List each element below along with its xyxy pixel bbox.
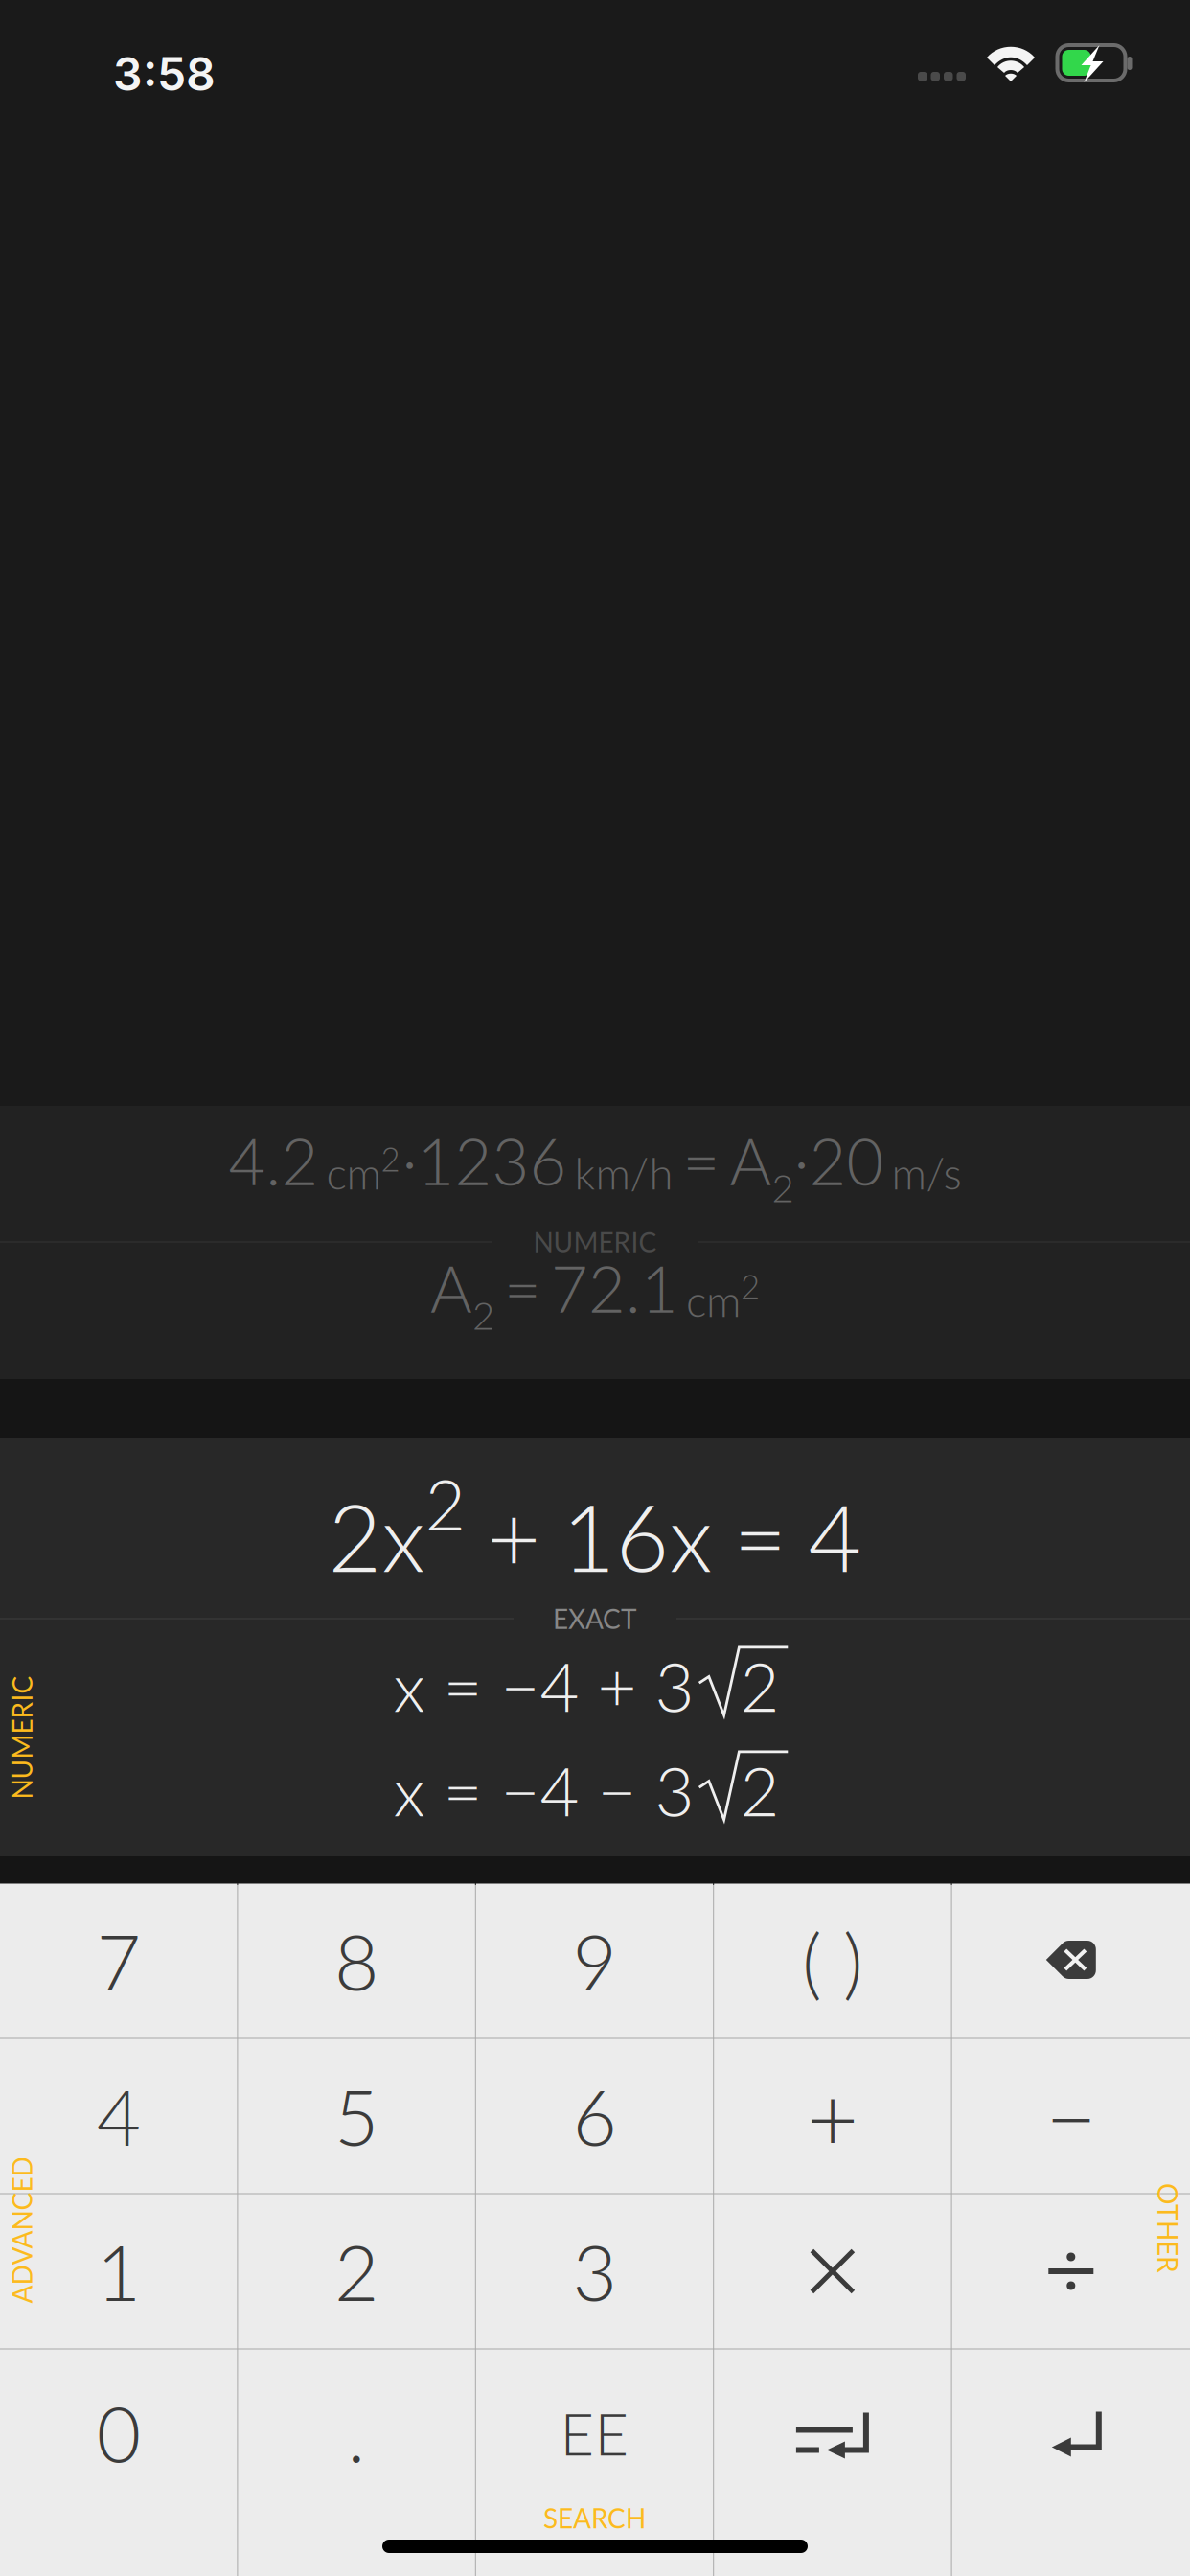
button[interactable]: ( ) <box>714 1884 951 2038</box>
staticText: − <box>1045 2062 1097 2170</box>
staticText: EXACT <box>553 1603 637 1635</box>
staticText: SEARCH <box>543 2502 646 2534</box>
staticText: OTHER <box>1123 2212 1190 2244</box>
button[interactable]: − <box>952 2039 1190 2193</box>
staticText: 72.1 <box>551 1250 678 1326</box>
staticText: x = −4 + <box>393 1645 655 1726</box>
staticText: ADVANCED <box>0 2214 95 2246</box>
staticText: ·20 <box>794 1122 884 1199</box>
button[interactable]: 6 <box>476 2039 713 2193</box>
button[interactable]: New line <box>714 2349 951 2576</box>
button[interactable]: 1 <box>0 2194 237 2348</box>
staticText: 2 <box>334 2225 379 2317</box>
staticText: km/h <box>574 1147 673 1199</box>
button[interactable]: OTHER <box>1149 2132 1187 2324</box>
staticText: 3 <box>655 1645 694 1726</box>
button[interactable]: 5 <box>238 2039 475 2193</box>
staticText: m/s <box>892 1147 961 1199</box>
staticText: 4.2 <box>229 1122 319 1199</box>
staticText: NUMERIC <box>533 1226 657 1258</box>
staticText: NUMERIC <box>0 1721 84 1754</box>
staticText: 2 <box>381 1139 400 1179</box>
staticText: = <box>733 1481 787 1591</box>
staticText: 2 <box>740 1645 779 1726</box>
button[interactable]: EE <box>476 2349 713 2576</box>
staticText: 7 <box>96 1915 141 2007</box>
button[interactable]: 0 <box>0 2349 237 2576</box>
staticText: 9 <box>572 1915 617 2007</box>
button[interactable]: 9 <box>476 1884 713 2038</box>
button[interactable]: Multiply <box>714 2194 951 2348</box>
staticText: EE <box>560 2397 629 2468</box>
staticText: 8 <box>334 1915 379 2007</box>
button[interactable]: Return <box>952 2349 1190 2576</box>
staticText: 3 <box>655 1750 694 1831</box>
staticText: 2 <box>772 1164 794 1210</box>
staticText: = <box>683 1122 720 1199</box>
staticText: 6 <box>572 2070 617 2162</box>
button[interactable]: 2 <box>238 2194 475 2348</box>
staticText: 4 <box>808 1481 862 1591</box>
staticText: ·1236 <box>402 1122 567 1199</box>
staticText: 0 <box>96 2387 141 2479</box>
button[interactable]: Delete <box>952 1884 1190 2038</box>
staticText: 1 <box>96 2225 141 2317</box>
staticText: 2 <box>472 1292 494 1338</box>
staticText: 5 <box>334 2070 379 2162</box>
staticText: cm <box>326 1147 381 1199</box>
staticText: . <box>347 2387 366 2479</box>
staticText: 4 <box>96 2070 141 2162</box>
staticText: A <box>430 1250 472 1326</box>
staticText: 16x <box>562 1481 712 1591</box>
staticText: A <box>730 1122 772 1199</box>
button[interactable]: . <box>238 2349 475 2576</box>
staticText: ( ) <box>802 1915 863 2007</box>
staticText: x = −4 − <box>393 1750 655 1831</box>
button[interactable]: NUMERIC <box>3 1642 41 1833</box>
staticText: 2 <box>740 1750 779 1831</box>
button[interactable]: 3 <box>476 2194 713 2348</box>
staticText: cm <box>686 1274 741 1326</box>
staticText: 3:58 <box>113 46 216 102</box>
staticText: 2x <box>328 1481 425 1591</box>
button[interactable]: 4 <box>0 2039 237 2193</box>
staticText: 3 <box>572 2225 617 2317</box>
staticText: 2 <box>741 1266 760 1306</box>
button[interactable]: Divide <box>952 2194 1190 2348</box>
button[interactable]: + <box>714 2039 951 2193</box>
staticText: 2 <box>425 1461 466 1545</box>
button[interactable]: ADVANCED <box>3 2134 41 2326</box>
staticText: = <box>504 1250 541 1326</box>
staticText: + <box>807 2062 858 2170</box>
button[interactable]: 7 <box>0 1884 237 2038</box>
staticText: + <box>487 1481 541 1591</box>
button[interactable]: 8 <box>238 1884 475 2038</box>
